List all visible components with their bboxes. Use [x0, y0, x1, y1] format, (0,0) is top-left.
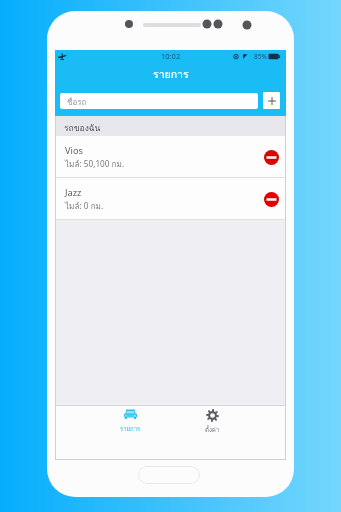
staticText: ตั้งค่า	[205, 425, 220, 435]
button[interactable]: Jazz	[55, 178, 286, 220]
staticText: 10:02	[161, 51, 181, 61]
staticText: ไมล์: 50,100 กม.	[65, 158, 125, 171]
staticText: Jazz	[65, 186, 82, 199]
staticText: รถของฉัน	[64, 121, 101, 135]
button[interactable]: ตั้งค่า	[177, 406, 247, 460]
staticText: รายการ	[120, 424, 141, 434]
button[interactable]: Remove	[264, 150, 279, 165]
button[interactable]: Vios	[55, 136, 286, 178]
staticText: ชื่อรถ	[67, 96, 87, 109]
button[interactable]: Add car	[263, 92, 280, 109]
button[interactable]: ชื่อรถ	[60, 93, 258, 109]
staticText: Vios	[65, 144, 83, 157]
staticText: รายการ	[153, 66, 189, 83]
button[interactable]: รายการ	[95, 406, 165, 460]
staticText: ไมล์: 0 กม.	[65, 200, 104, 213]
staticText: 85%	[254, 52, 267, 61]
button[interactable]: Remove	[264, 192, 279, 207]
